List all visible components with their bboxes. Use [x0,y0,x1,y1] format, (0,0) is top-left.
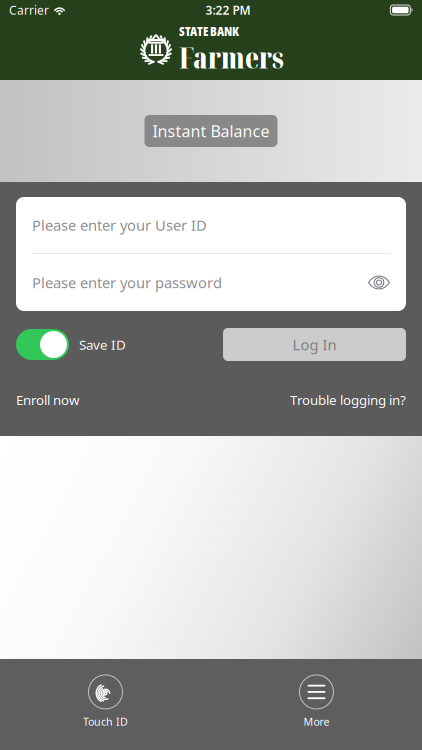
staticText: Instant Balance [152,120,269,142]
staticText: Log In [292,335,336,354]
button[interactable]: Trouble logging in? [290,391,406,409]
button[interactable]: Save ID [16,329,126,360]
button[interactable]: Touch ID [0,674,211,729]
staticText: Save ID [79,336,126,353]
staticText: Farmers [179,39,284,77]
staticText: More [303,714,329,729]
staticText: 3:22 PM [205,2,250,18]
staticText: Trouble logging in? [290,391,406,409]
staticText: Carrier [9,2,49,18]
button[interactable]: More [211,674,422,729]
button[interactable]: Log In [223,328,406,361]
staticText: STATE BANK [179,23,239,40]
staticText: Touch ID [83,714,128,729]
button[interactable]: Enroll now [16,391,79,409]
button[interactable]: Instant Balance [144,115,277,147]
button[interactable]: Please enter your User ID [16,197,406,253]
staticText: Enroll now [16,391,79,409]
staticText: Please enter your User ID [32,215,207,235]
button[interactable]: Show password [368,273,390,291]
staticText: Please enter your password [32,273,222,292]
